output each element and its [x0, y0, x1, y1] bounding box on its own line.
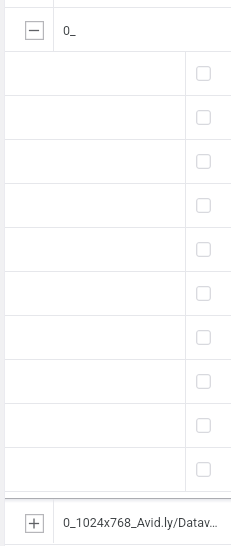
button[interactable]: Select row [196, 66, 211, 81]
button[interactable]: Expand group [25, 514, 44, 533]
button[interactable]: Select row [196, 154, 211, 169]
button[interactable]: Select row [196, 242, 211, 257]
button[interactable]: Select row [196, 330, 211, 345]
button[interactable]: Select row [196, 286, 211, 301]
button[interactable]: Select row [196, 198, 211, 213]
button[interactable]: Collapse group [25, 21, 44, 40]
staticText: 0_1024x768_Avid.ly/Datav… [63, 515, 218, 530]
button[interactable]: Select row [196, 418, 211, 433]
button[interactable]: Select row [196, 110, 211, 125]
button[interactable]: Select row [196, 374, 211, 389]
button[interactable]: Select row [196, 462, 211, 477]
staticText: 0_ [63, 23, 76, 38]
